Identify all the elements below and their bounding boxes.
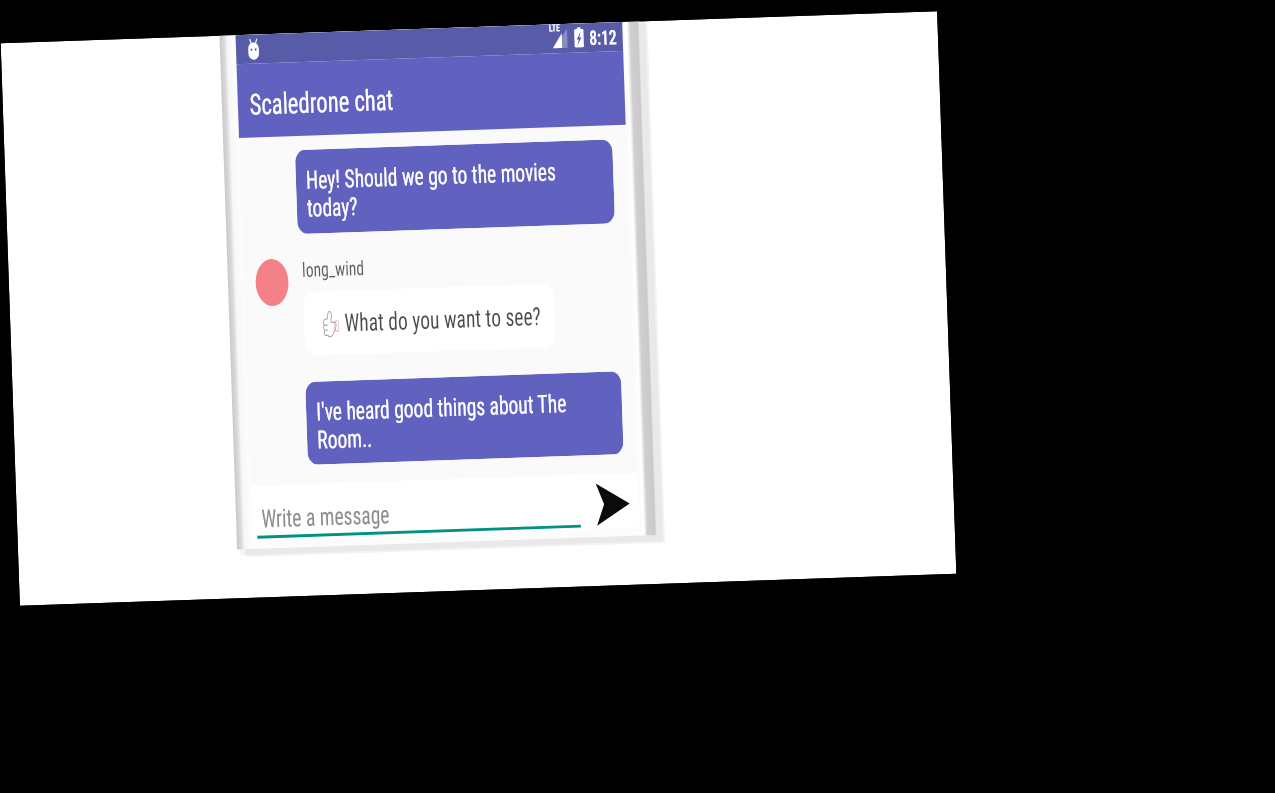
button[interactable]: What do you want to see?	[303, 283, 556, 356]
staticText: long_wind	[302, 256, 365, 281]
staticText: Scaledrone chat	[249, 83, 394, 122]
staticText: LTE	[549, 24, 561, 34]
button[interactable]: Send	[594, 479, 631, 529]
staticText: 8:12	[589, 25, 618, 49]
button[interactable]: Hey! Should we go to the movies today?	[295, 139, 615, 234]
staticText: What do you want to see?	[344, 302, 541, 338]
staticText: Hey! Should we go to the movies today?	[305, 157, 558, 223]
button[interactable]: I've heard good things about The Room..	[305, 371, 624, 465]
staticText: I've heard good things about The Room..	[316, 389, 568, 455]
staticText: Write a message	[261, 500, 390, 534]
